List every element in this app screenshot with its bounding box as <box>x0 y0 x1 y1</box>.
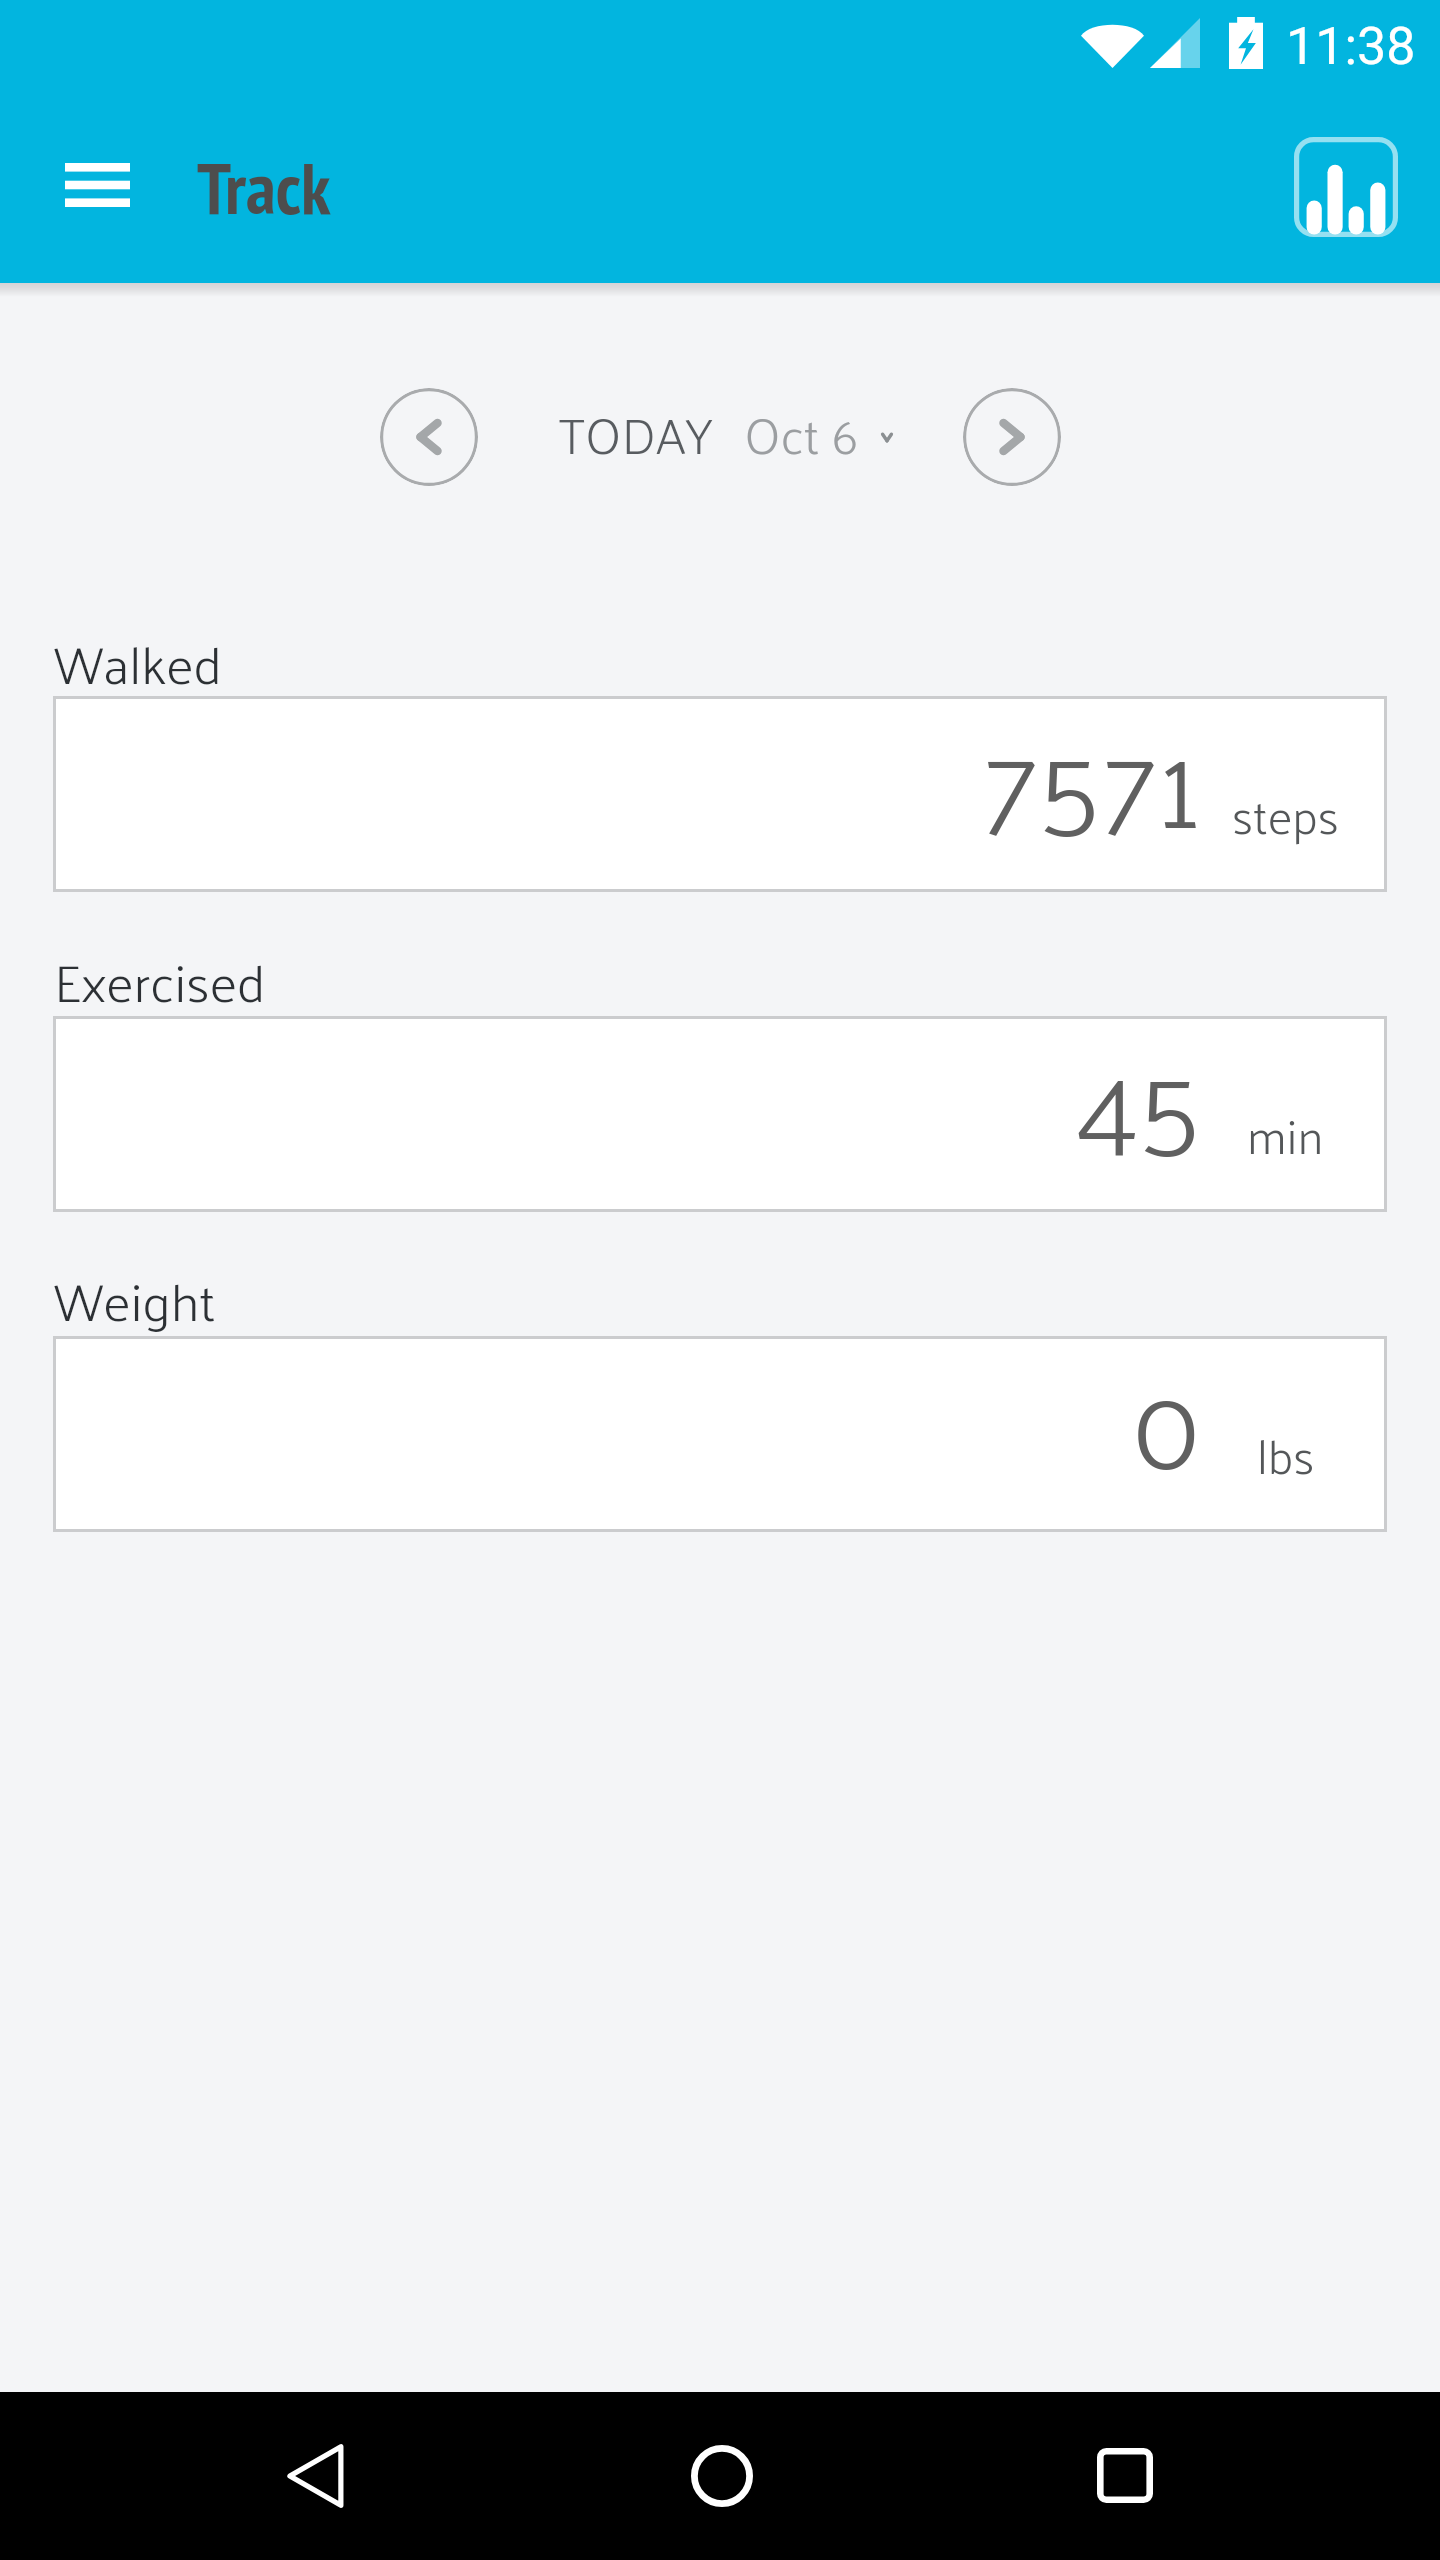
button[interactable]: Home <box>656 2410 788 2542</box>
staticText: lbs <box>1257 1412 1315 1497</box>
button[interactable]: 7571 <box>53 696 1387 892</box>
button[interactable]: Recent apps <box>1063 2413 1187 2539</box>
button[interactable]: Next day <box>963 388 1061 486</box>
button[interactable]: 0 <box>53 1336 1387 1532</box>
staticText: Exercised <box>54 933 266 1027</box>
staticText: Oct 6 <box>744 388 859 479</box>
button[interactable]: 45 <box>53 1016 1387 1212</box>
staticText: min <box>1247 1092 1324 1177</box>
button[interactable]: Open navigation menu <box>32 130 163 241</box>
staticText: 11:38 <box>1286 16 1416 77</box>
button[interactable]: Previous day <box>380 388 478 486</box>
staticText: 7571 <box>982 674 1202 870</box>
button[interactable]: Charts <box>1283 126 1408 247</box>
staticText: Weight <box>54 1252 216 1346</box>
staticText: Walked <box>54 615 222 709</box>
button[interactable]: Back <box>252 2409 378 2543</box>
staticText: 45 <box>1075 994 1202 1190</box>
staticText: 0 <box>1131 1314 1202 1510</box>
staticText: Track <box>197 141 331 234</box>
staticText: TODAY <box>559 388 713 479</box>
staticText: steps <box>1232 772 1339 857</box>
